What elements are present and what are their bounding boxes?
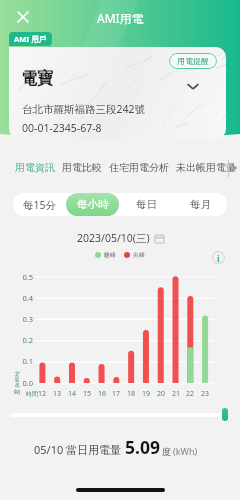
staticText: 度 (kWh) [13,371,21,395]
staticText: 23 [197,389,213,399]
staticText: 21 [168,389,184,399]
button[interactable]: Expand [184,77,202,95]
staticText: 每15分 [23,198,57,212]
staticText: 每小時 [77,198,109,211]
button[interactable]: 每月 [173,193,227,216]
staticText: 用電提醒 [177,56,209,66]
staticText: 0.5 [21,272,33,282]
staticText: 14 [64,389,80,399]
button[interactable]: More tabs [230,164,238,172]
button[interactable]: 用電資訊 [12,159,59,176]
staticText: 0.1 [21,356,33,366]
staticText: 尖峰 [133,251,145,259]
staticText: 5.09 [125,435,160,459]
staticText: 0.2 [21,335,33,345]
staticText: 離峰 [104,251,116,259]
staticText: 時間 [26,390,38,398]
staticText: 每日 [136,198,157,211]
button[interactable]: 未出帳用電量 [173,159,240,176]
staticText: 05/10 當日用電量 [34,442,122,457]
staticText: AMI 用戶 [14,34,47,44]
button[interactable]: Pick date [155,234,164,243]
button[interactable]: 每15分 [13,193,66,216]
button[interactable]: Close [11,5,35,29]
staticText: 未出帳用電量 [176,161,236,174]
button[interactable]: 每小時 [66,193,119,216]
staticText: 台北市羅斯福路三段242號 [22,102,146,116]
button[interactable]: 每日 [119,193,173,216]
staticText: (kWh) [173,445,198,457]
staticText: 15 [79,389,95,399]
staticText: 0.0 [21,378,33,388]
staticText: 16 [94,389,110,399]
staticText: 13 [49,389,65,399]
staticText: 電寶 [21,69,53,89]
button[interactable]: AMI 用戶 [9,32,52,46]
staticText: 用電資訊 [15,161,55,174]
staticText: 20 [153,389,169,399]
staticText: 12 [34,389,50,399]
button[interactable]: 住宅用電分析 [106,159,173,176]
staticText: 0.3 [21,314,33,324]
staticText: 2023/05/10(三) [77,231,150,245]
staticText: 18 [123,389,139,399]
staticText: 用電比較 [62,161,102,174]
staticText: 住宅用電分析 [109,161,169,174]
button[interactable]: Info [212,251,225,264]
staticText: 每月 [190,198,211,211]
staticText: 17 [108,389,124,399]
staticText: 19 [138,389,154,399]
staticText: 00-01-2345-67-8 [22,121,102,135]
staticText: 22 [182,389,198,399]
staticText: 度 [162,446,171,457]
staticText: 0.4 [21,293,33,303]
button[interactable]: 用電提醒 [169,53,217,69]
button[interactable]: 用電比較 [59,159,106,176]
staticText: i [217,252,220,264]
staticText: AMI用電 [97,10,144,26]
